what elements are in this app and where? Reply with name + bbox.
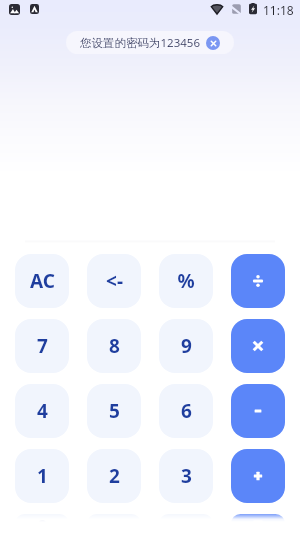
staticText: 8 — [109, 333, 120, 359]
button[interactable]: 4 — [15, 384, 69, 438]
staticText: 7 — [37, 333, 48, 359]
staticText: . — [111, 514, 117, 533]
button[interactable]: 6 — [159, 384, 213, 438]
staticText: 3 — [181, 463, 192, 489]
button[interactable]: % — [159, 254, 213, 308]
staticText: 9 — [181, 333, 192, 359]
other: No signal — [232, 3, 241, 15]
button[interactable]: <- — [87, 254, 141, 308]
other: Battery charging — [249, 3, 257, 15]
button[interactable]: AC — [15, 254, 69, 308]
button[interactable]: 5 — [87, 384, 141, 438]
button[interactable]: Divide — [231, 254, 285, 308]
button[interactable]: 8 — [87, 319, 141, 373]
other: Gallery — [9, 4, 20, 15]
button[interactable]: 您设置的密码为123456 — [66, 31, 234, 54]
button[interactable]: 9 — [159, 319, 213, 373]
staticText: AC — [30, 268, 55, 294]
button[interactable]: Plus — [231, 449, 285, 503]
staticText: 5 — [109, 398, 120, 424]
staticText: % — [177, 268, 195, 294]
staticText: 11:18 — [263, 2, 294, 18]
button[interactable]: 1 — [15, 449, 69, 503]
staticText: 1 — [37, 463, 48, 489]
button[interactable]: Close — [206, 36, 220, 50]
staticText: 您设置的密码为123456 — [80, 35, 200, 51]
staticText: 2 — [109, 463, 120, 489]
other: Wi-Fi — [211, 4, 223, 14]
staticText: 0 — [37, 514, 48, 533]
staticText: 4 — [37, 398, 48, 424]
button[interactable]: Minus — [231, 384, 285, 438]
staticText: <- — [106, 268, 123, 294]
staticText: 6 — [181, 398, 192, 424]
button[interactable]: 2 — [87, 449, 141, 503]
button[interactable]: 7 — [15, 319, 69, 373]
other: App — [30, 4, 39, 14]
button[interactable]: 3 — [159, 449, 213, 503]
button[interactable]: Multiply — [231, 319, 285, 373]
button[interactable]: Equals — [231, 514, 285, 533]
